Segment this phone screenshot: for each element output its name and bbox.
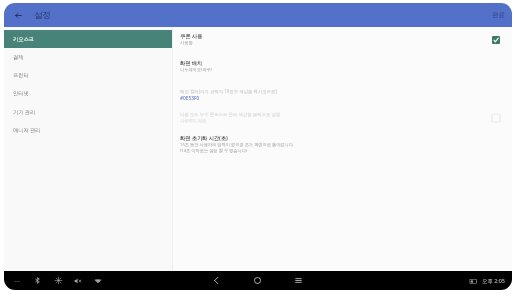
staticText: 다른 모드 누수 콘트스트 온의 색상을 블랙으로 설정 bbox=[180, 111, 281, 117]
staticText: 화면 초기화 시간(초) bbox=[180, 134, 228, 141]
button[interactable]: 결제 bbox=[4, 48, 172, 66]
staticText: 결제 bbox=[13, 54, 24, 61]
staticText: 프린터 bbox=[13, 72, 29, 79]
button[interactable]: 인터넷 bbox=[4, 84, 172, 102]
button[interactable]: Recent apps bbox=[291, 271, 305, 290]
button[interactable]: Brightness bbox=[51, 271, 65, 290]
staticText: 인터넷 bbox=[13, 90, 29, 97]
staticText: 설정 bbox=[34, 10, 51, 21]
button[interactable]: 키오스크 bbox=[4, 30, 172, 48]
staticText: 오후 2:05 bbox=[482, 277, 505, 284]
other: Battery bbox=[467, 275, 479, 287]
staticText: 매니저 관리 bbox=[13, 126, 41, 133]
button[interactable]: 블랙 모드 checkbox bbox=[489, 111, 503, 125]
staticText: #0E53F0 bbox=[180, 95, 200, 102]
staticText: 메인 컬러(여기 선택지 16진수 색상을 헥사코드로) bbox=[180, 88, 277, 94]
staticText: 15초 동안 사용자의 입력이 없으면 초기 화면으로 돌아갑니다. bbox=[180, 142, 295, 148]
staticText: 완료 bbox=[492, 11, 505, 19]
button[interactable]: 기기 관리 bbox=[4, 102, 172, 120]
button[interactable]: Back bbox=[10, 8, 26, 22]
button[interactable]: Home bbox=[250, 271, 264, 290]
staticText: 나누계적요(좌우) bbox=[180, 67, 212, 73]
button[interactable]: Bluetooth bbox=[30, 271, 44, 290]
button[interactable]: Back bbox=[209, 271, 223, 290]
staticText: 기기 관리 bbox=[13, 108, 36, 115]
button[interactable]: More bbox=[10, 271, 24, 290]
staticText: 쿠폰 사용 bbox=[180, 32, 203, 39]
staticText: 사용함 bbox=[180, 40, 193, 45]
staticText: 사용하지 않음 bbox=[180, 118, 207, 124]
staticText: 키오스크 bbox=[13, 36, 34, 43]
staticText: 화면 배치 bbox=[180, 59, 203, 66]
button[interactable]: 완료 bbox=[489, 9, 508, 21]
button[interactable]: 매니저 관리 bbox=[4, 120, 172, 138]
button[interactable]: 쿠폰 사용 checkbox bbox=[489, 33, 503, 47]
button[interactable]: 프린터 bbox=[4, 66, 172, 84]
button[interactable]: Mute bbox=[71, 271, 85, 290]
button[interactable]: Wi-Fi bbox=[91, 271, 105, 290]
staticText: (14초 이하로는 설정 할 수 없습니다) bbox=[180, 148, 248, 154]
